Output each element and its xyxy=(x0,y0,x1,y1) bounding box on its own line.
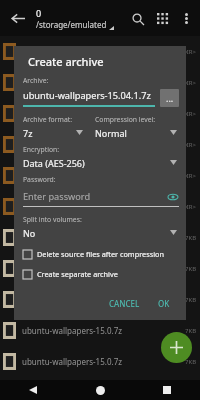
button[interactable]: Back xyxy=(6,6,30,30)
button[interactable]: No xyxy=(23,226,179,239)
staticText: <DIR> xyxy=(179,110,197,118)
staticText: 7z xyxy=(23,127,76,139)
staticText: ubuntu-wallpapers-15.0.7z xyxy=(22,325,185,336)
button[interactable]: Normal xyxy=(95,126,179,139)
button[interactable]: <DIR> xyxy=(0,160,200,191)
staticText: No xyxy=(23,227,170,239)
staticText: ubuntu-wallpapers-15.0.7z xyxy=(22,232,185,243)
staticText xyxy=(22,108,179,119)
staticText: <DIR> xyxy=(179,141,197,149)
button[interactable]: Search xyxy=(125,6,150,31)
staticText: ubuntu-wallpapers-15.0.7z xyxy=(22,263,185,274)
button[interactable]: Show password xyxy=(167,191,179,203)
button[interactable]: Data (AES-256) xyxy=(23,156,179,169)
staticText: Split into volumes: xyxy=(23,215,82,224)
staticText: OK xyxy=(158,298,170,309)
staticText: Compression level: xyxy=(95,115,156,124)
staticText xyxy=(22,170,179,181)
staticText: Data (AES-256) xyxy=(23,157,170,169)
staticText: Normal xyxy=(95,127,170,139)
staticText: Archive: xyxy=(23,76,49,85)
button[interactable]: Delete source files after compression xyxy=(23,246,179,262)
button[interactable]: Add xyxy=(161,332,192,363)
staticText xyxy=(22,139,179,150)
button[interactable]: Home xyxy=(90,380,110,400)
button[interactable]: Apps xyxy=(150,6,175,31)
staticText: <DIR> xyxy=(179,48,197,56)
staticText: Create separate archive xyxy=(37,269,118,279)
staticText: Delete source files after compression xyxy=(37,249,164,259)
button[interactable]: OK xyxy=(152,294,176,313)
staticText: 7KB xyxy=(185,327,197,335)
button[interactable]: ubuntu-wallpapers-15.0.7z xyxy=(0,284,200,315)
button[interactable]: More options xyxy=(175,7,197,29)
staticText: /storage/emulated xyxy=(36,19,107,30)
button[interactable]: <DIR> xyxy=(0,36,200,67)
button[interactable]: Recents xyxy=(157,380,177,400)
button[interactable]: 7z xyxy=(23,126,85,139)
staticText: <DIR> xyxy=(179,203,197,211)
button[interactable]: <DIR> xyxy=(0,191,200,222)
staticText: <DIR> xyxy=(179,172,197,180)
button[interactable]: ubuntu-wallpapers-15.0.7z xyxy=(0,222,200,253)
staticText: 0 xyxy=(36,7,42,19)
button[interactable]: Create separate archive xyxy=(23,266,179,282)
staticText: <DIR> xyxy=(179,79,197,87)
button[interactable]: ubuntu-wallpapers-15.0.7z xyxy=(0,253,200,284)
button[interactable]: Browse xyxy=(160,89,179,107)
button[interactable]: CANCEL xyxy=(104,294,145,313)
staticText: Enter password xyxy=(23,190,167,203)
button[interactable]: Back xyxy=(23,380,43,400)
button[interactable]: ubuntu-wallpapers-15.0.7z xyxy=(0,315,200,346)
staticText: 7KB xyxy=(185,296,197,304)
staticText xyxy=(22,201,179,212)
staticText: Password: xyxy=(23,175,56,184)
staticText: Encryption: xyxy=(23,145,60,154)
button[interactable]: ubuntu-wallpapers-15.0.7z xyxy=(0,346,200,377)
button[interactable]: <DIR> xyxy=(0,67,200,98)
staticText: 7KB xyxy=(185,265,197,273)
staticText: 7KB xyxy=(185,358,197,366)
staticText: Create archive xyxy=(28,54,104,69)
staticText: ubuntu-wallpapers-15.0.7z xyxy=(22,356,185,367)
staticText: ubuntu-wallpapers-15.04.1.7z xyxy=(23,89,151,102)
staticText: 7KB xyxy=(185,234,197,242)
button[interactable]: <DIR> xyxy=(0,98,200,129)
staticText: ubuntu-wallpapers-15.0.7z xyxy=(22,294,185,305)
staticText xyxy=(22,77,179,88)
staticText: CANCEL xyxy=(109,298,140,309)
staticText: Archive format: xyxy=(23,115,72,124)
staticText: ... xyxy=(166,92,174,104)
button[interactable]: <DIR> xyxy=(0,129,200,160)
